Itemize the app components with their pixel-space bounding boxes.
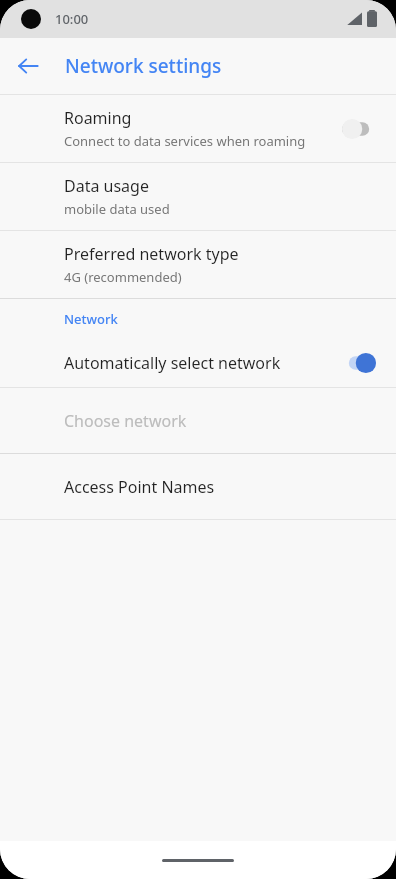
button[interactable]: Choose network	[0, 388, 396, 453]
staticText: 4G (recommended)	[64, 268, 182, 286]
staticText: Connect to data services when roaming	[64, 132, 306, 150]
staticText: Data usage	[64, 175, 149, 197]
staticText: Choose network	[64, 410, 187, 432]
button[interactable]: Access Point Names	[0, 454, 396, 519]
button[interactable]: On	[342, 352, 376, 374]
staticText: mobile data used	[64, 200, 170, 218]
staticText: Automatically select network	[64, 352, 342, 374]
button[interactable]: Data usage	[0, 163, 396, 230]
button[interactable]: Preferred network type	[0, 231, 396, 298]
button[interactable]: Back	[6, 44, 50, 88]
staticText: Access Point Names	[64, 476, 215, 498]
button[interactable]: Off	[342, 118, 376, 140]
button[interactable]: Automatically select network	[0, 339, 396, 387]
staticText: Roaming	[64, 107, 132, 129]
staticText: Network	[64, 310, 118, 328]
button[interactable]: Roaming	[0, 95, 396, 162]
staticText: Network settings	[65, 53, 222, 79]
staticText: 10:00	[55, 10, 89, 28]
staticText: Preferred network type	[64, 243, 239, 265]
